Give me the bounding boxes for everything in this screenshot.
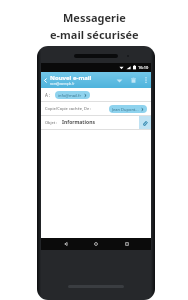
staticText: Informations [62,119,95,126]
button[interactable]: A : [41,88,151,101]
button[interactable]: Envoyer [112,72,126,88]
staticText: Messagerie [63,10,126,25]
staticText: info@mail.fr [58,93,82,98]
button[interactable]: Nouvel e-mail [50,74,112,86]
button[interactable]: Retour [41,72,50,88]
staticText: nom@exemple.fr [50,82,75,86]
button[interactable]: Objet : [41,116,151,129]
button[interactable]: Applications récentes [121,238,133,250]
staticText: Copie/Copie cachée, De : [45,106,92,111]
staticText: Objet : [45,120,58,125]
staticText: Nouvel e-mail [50,74,92,82]
staticText: e-mail sécurisée [50,27,139,42]
button[interactable]: Accueil [90,238,102,250]
button[interactable]: Retour [60,238,72,250]
staticText: A : [45,92,51,98]
button[interactable]: Joindre un fichier [139,116,151,129]
button[interactable]: Jean Dupont... [109,105,147,113]
button[interactable]: Supprimer [126,72,140,88]
button[interactable]: Copie/Copie cachée, De : [41,102,151,115]
staticText: Jean Dupont... [112,107,139,112]
staticText: 16:10 [138,65,149,70]
button[interactable]: Plus d'options [140,72,151,88]
button[interactable]: info@mail.fr [55,91,90,99]
